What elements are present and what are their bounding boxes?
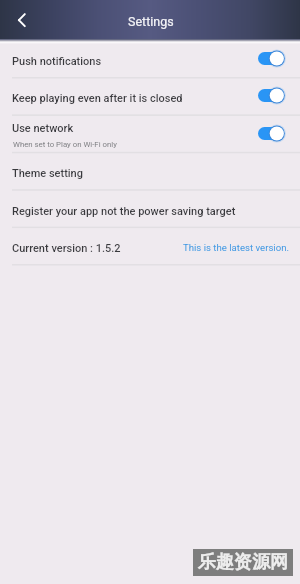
button[interactable]: Push notifications: [0, 40, 300, 77]
staticText: Keep playing even after it is closed: [12, 92, 183, 105]
button[interactable]: Theme setting: [0, 152, 300, 189]
staticText: When set to Play on Wi-Fi only: [13, 140, 117, 149]
staticText: Settings: [128, 14, 174, 29]
button[interactable]: Back: [0, 0, 39, 39]
staticText: Theme setting: [12, 167, 83, 180]
button[interactable]: Register your app not the power saving t…: [0, 190, 300, 227]
staticText: 乐趣资源网: [198, 551, 288, 574]
button[interactable]: Toggle: [258, 88, 286, 104]
staticText: This is the latest version.: [183, 242, 289, 253]
button[interactable]: Toggle: [258, 51, 286, 67]
button[interactable]: Keep playing even after it is closed: [0, 77, 300, 114]
button[interactable]: Current version : 1.5.2: [0, 227, 300, 264]
staticText: Register your app not the power saving t…: [12, 205, 236, 218]
staticText: Push notifications: [12, 55, 102, 68]
button[interactable]: Toggle: [258, 126, 286, 142]
staticText: Current version : 1.5.2: [12, 242, 121, 255]
staticText: Use network: [12, 122, 74, 135]
button[interactable]: Use network: [0, 115, 300, 152]
